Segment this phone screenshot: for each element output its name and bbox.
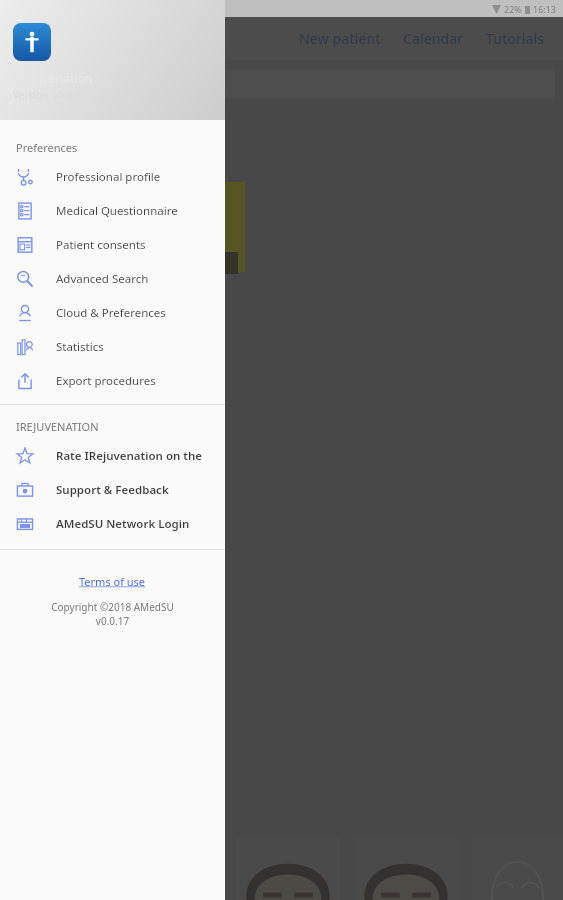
button[interactable]: Cloud & Preferences <box>0 296 225 330</box>
button[interactable]: Tutorials <box>484 25 547 52</box>
staticText: AMedSU Network Login <box>56 516 190 532</box>
staticText: Statistics <box>56 339 104 355</box>
button[interactable]: Rate IRejuvenation on the <box>0 439 225 473</box>
button[interactable]: Statistics <box>0 330 225 364</box>
staticText: Tutorials <box>486 29 545 48</box>
button[interactable]: Support & Feedback <box>0 473 225 507</box>
staticText: Rate IRejuvenation on the <box>56 448 203 464</box>
staticText: Professional profile <box>56 169 161 185</box>
staticText: Preferences <box>16 140 78 155</box>
button[interactable]: Professional profile <box>0 160 225 194</box>
staticText: Medical Questionnaire <box>56 203 178 219</box>
staticText: Calendar <box>403 29 464 48</box>
staticText: Support & Feedback <box>56 482 169 498</box>
button[interactable] <box>8 70 555 98</box>
staticText: Cloud & Preferences <box>56 305 166 321</box>
button[interactable] <box>354 838 458 900</box>
button[interactable]: Calendar <box>401 25 466 52</box>
button[interactable]: Export procedures <box>0 364 225 398</box>
button[interactable]: Medical Questionnaire <box>0 194 225 228</box>
staticText: New patient <box>299 29 381 48</box>
button[interactable]: New patient <box>297 25 383 52</box>
staticText: Copyright ©2018 AMedSU v0.0.17 <box>0 600 225 628</box>
staticText: IREJUVENATION <box>16 419 99 434</box>
button[interactable]: AMedSU Network Login <box>0 507 225 541</box>
staticText: 16:13 <box>533 3 557 15</box>
staticText: Patient consents <box>56 237 146 253</box>
button[interactable]: Patient consents <box>0 228 225 262</box>
button[interactable] <box>236 838 340 900</box>
staticText: Export procedures <box>56 373 156 389</box>
staticText: Advanced Search <box>56 271 149 287</box>
button[interactable]: Advanced Search <box>0 262 225 296</box>
staticText: 22% <box>504 3 522 15</box>
button[interactable]: Terms of use <box>0 574 225 589</box>
staticText: Terms of use <box>79 574 146 589</box>
